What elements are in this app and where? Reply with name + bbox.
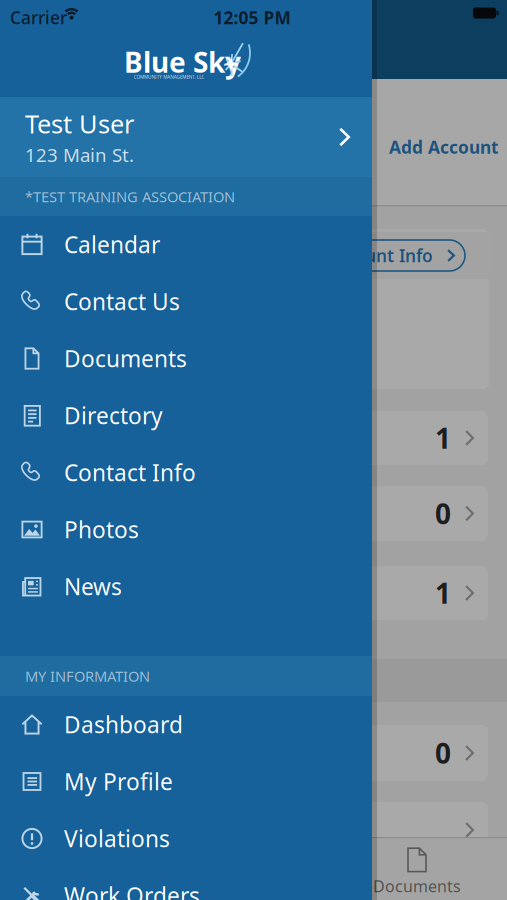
button[interactable]: 1 item — [20, 566, 488, 620]
staticText: 0 — [435, 734, 451, 772]
staticText: Calendar — [64, 229, 160, 259]
button[interactable]: Documents — [0, 330, 372, 387]
button[interactable]: Account Info — [310, 240, 465, 271]
button[interactable]: Test User — [0, 97, 372, 177]
staticText: News — [64, 571, 122, 601]
button[interactable]: Photos — [0, 501, 372, 558]
staticText: 1 — [435, 419, 451, 457]
staticText: COMMUNITY MANAGEMENT, LLC — [108, 72, 230, 82]
staticText: Dashboard — [64, 709, 183, 739]
staticText: Documents — [373, 875, 461, 897]
button[interactable]: Add Account — [369, 132, 507, 162]
button[interactable]: Directory — [0, 387, 372, 444]
staticText: Carrier — [10, 6, 67, 29]
staticText: *TEST TRAINING ASSOCIATION — [25, 187, 235, 206]
staticText: Violations — [64, 823, 170, 853]
staticText: Documents — [64, 343, 187, 373]
staticText: 1 — [435, 574, 451, 612]
staticText: Test User — [25, 107, 134, 140]
staticText: 12:05 PM — [213, 6, 290, 29]
button[interactable]: Work Orders — [0, 867, 372, 900]
staticText: Blue Sky — [124, 43, 241, 81]
button[interactable]: Dashboard — [0, 696, 372, 753]
staticText: MY INFORMATION — [25, 666, 150, 686]
staticText: Account Info — [324, 244, 433, 267]
button[interactable]: Violations — [0, 810, 372, 867]
button[interactable]: My Profile — [0, 753, 372, 810]
button[interactable]: 0 items — [20, 486, 488, 541]
staticText: Contact Info — [64, 457, 196, 487]
staticText: Directory — [64, 400, 163, 430]
button[interactable]: Documents — [367, 843, 467, 900]
button[interactable]: Contact Us — [0, 273, 372, 330]
button[interactable]: Calendar — [0, 216, 372, 273]
button[interactable]: News — [0, 558, 372, 615]
staticText: My Profile — [64, 766, 173, 796]
button[interactable]: Contact Info — [0, 444, 372, 501]
button[interactable]: View details — [20, 802, 488, 858]
button[interactable]: 1 item — [20, 411, 488, 465]
staticText: Contact Us — [64, 286, 180, 316]
staticText: Add Account — [389, 135, 499, 158]
staticText: 123 Main St. — [25, 142, 134, 167]
staticText: Photos — [64, 514, 139, 544]
staticText: 0 — [435, 495, 451, 532]
staticText: Work Orders — [64, 880, 200, 900]
button[interactable]: 0 items — [20, 725, 488, 781]
